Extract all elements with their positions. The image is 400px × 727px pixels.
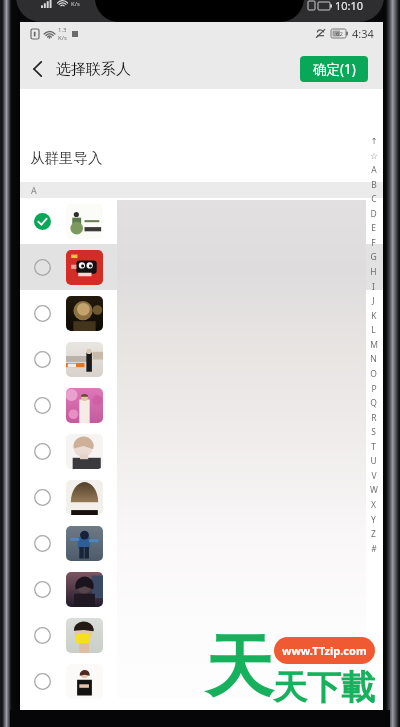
button[interactable]	[20, 244, 383, 290]
staticText: W	[370, 484, 378, 496]
staticText: O	[370, 368, 377, 380]
button[interactable]	[20, 290, 383, 336]
staticText: 从群里导入	[30, 149, 103, 167]
staticText: ☆	[370, 151, 378, 161]
staticText: www.TTzip.com	[282, 643, 367, 658]
staticText: 4:34	[352, 26, 374, 41]
staticText: #	[371, 543, 377, 555]
staticText: C	[371, 193, 377, 205]
button[interactable]: Alphabet index	[364, 135, 383, 555]
staticText: 天	[205, 625, 273, 711]
staticText: V	[371, 470, 377, 482]
staticText: F	[371, 237, 376, 249]
button[interactable]	[20, 612, 383, 658]
button[interactable]	[20, 520, 383, 566]
staticText: B	[371, 179, 377, 191]
staticText: K/s	[71, 0, 80, 8]
button[interactable]	[20, 336, 383, 382]
staticText: 10:10	[335, 0, 364, 13]
staticText: J	[372, 295, 375, 307]
button[interactable]	[20, 428, 383, 474]
button[interactable]: Back	[24, 56, 50, 82]
staticText: X	[371, 499, 376, 511]
staticText: S	[371, 426, 376, 438]
staticText: 确定(1)	[313, 60, 356, 78]
staticText: I	[372, 281, 375, 293]
staticText: P	[371, 383, 377, 395]
staticText: K/s	[58, 34, 67, 42]
button[interactable]	[20, 198, 383, 244]
staticText: L	[371, 324, 376, 336]
staticText: A	[31, 184, 37, 196]
staticText: R	[371, 412, 377, 424]
staticText: 1.3	[58, 26, 67, 34]
staticText: G	[370, 251, 377, 263]
staticText: K	[371, 310, 377, 322]
staticText: H	[370, 266, 377, 278]
staticText: E	[371, 222, 376, 234]
staticText: 天下載	[273, 666, 375, 709]
staticText: ↑	[370, 136, 378, 146]
staticText: N	[370, 353, 377, 365]
staticText: 选择联系人	[56, 60, 131, 79]
staticText: Y	[371, 514, 376, 526]
staticText: T	[371, 441, 376, 453]
button[interactable]: 确定(1)	[300, 56, 368, 82]
staticText: Q	[370, 397, 377, 409]
staticText: U	[370, 455, 377, 467]
staticText: Z	[371, 528, 376, 540]
staticText: M	[370, 339, 378, 351]
staticText: 62	[336, 30, 343, 38]
button[interactable]	[20, 566, 383, 612]
button[interactable]	[20, 474, 383, 520]
button[interactable]	[20, 382, 383, 428]
button[interactable]: 从群里导入	[20, 133, 383, 182]
button[interactable]	[20, 658, 383, 704]
staticText: A	[371, 164, 377, 176]
staticText: D	[370, 208, 377, 220]
